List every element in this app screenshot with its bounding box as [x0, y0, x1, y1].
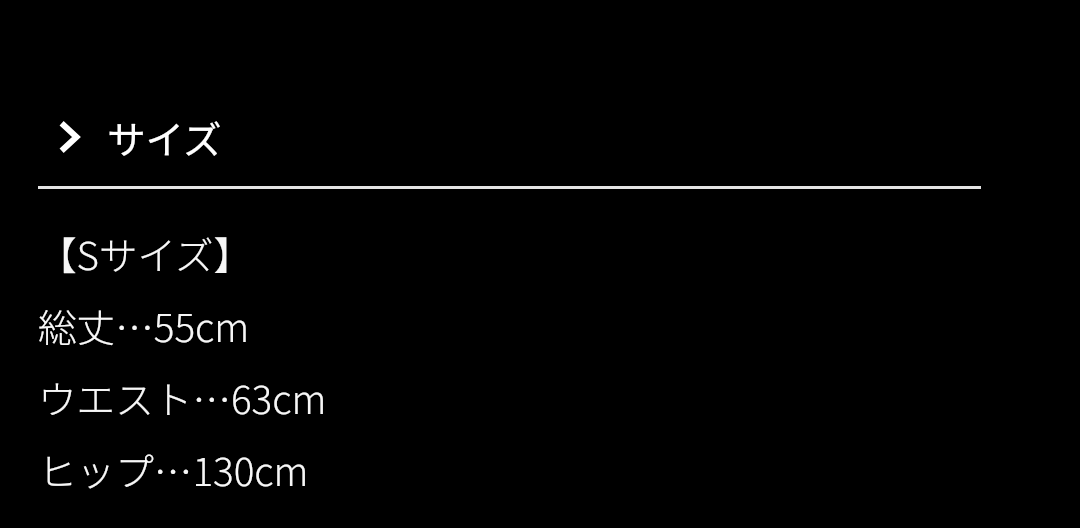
- staticText: ウエスト…63cm: [38, 369, 327, 425]
- staticText: サイズ: [107, 109, 222, 165]
- staticText: 総丈…55cm: [38, 297, 250, 353]
- staticText: ヒップ…130cm: [38, 441, 309, 497]
- staticText: 【Sサイズ】: [38, 225, 253, 281]
- button[interactable]: Collapse size section: [0, 91, 1080, 183]
- other: Collapse size section: [56, 118, 84, 156]
